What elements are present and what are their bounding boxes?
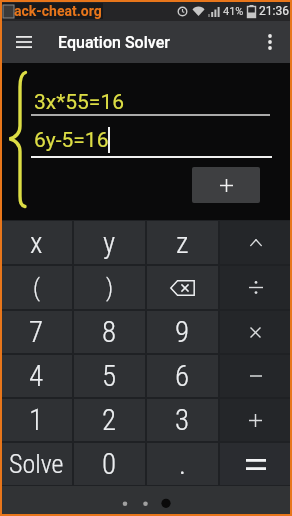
button[interactable]	[220, 311, 291, 353]
button[interactable]: 6	[147, 355, 218, 397]
staticText: 5	[102, 359, 117, 393]
button[interactable]	[252, 21, 288, 63]
staticText: 1	[29, 403, 44, 437]
staticText: 6	[175, 359, 190, 393]
staticText: 8	[102, 315, 117, 349]
staticText: x	[30, 226, 43, 260]
button[interactable]: 8	[74, 311, 145, 353]
staticText: 2	[102, 403, 117, 437]
button[interactable]	[220, 399, 291, 441]
button[interactable]: 2	[74, 399, 145, 441]
button[interactable]: 7	[1, 311, 72, 353]
button[interactable]: .	[147, 443, 218, 485]
button[interactable]	[220, 355, 291, 397]
button[interactable]	[220, 221, 291, 264]
staticText: ack-cheat.org	[14, 3, 102, 19]
staticText: )	[106, 274, 114, 302]
staticText: 0	[102, 447, 117, 481]
button[interactable]: 9	[147, 311, 218, 353]
button[interactable]	[220, 266, 291, 309]
button[interactable]: 4	[1, 355, 72, 397]
button[interactable]: Solve	[1, 443, 72, 485]
button[interactable]: z	[147, 221, 218, 264]
staticText: z	[176, 226, 189, 260]
staticText: 9	[175, 315, 190, 349]
staticText: 6y-5=16	[34, 128, 109, 153]
staticText: 3x*55=16	[34, 90, 124, 115]
staticText: 3	[175, 403, 190, 437]
staticText: (	[33, 274, 40, 302]
staticText: .	[179, 447, 186, 481]
button[interactable]: )	[74, 266, 145, 309]
button[interactable]	[192, 167, 260, 203]
staticText: Equation Solver	[58, 33, 170, 52]
button[interactable]: 0	[74, 443, 145, 485]
button[interactable]	[220, 443, 291, 485]
staticText: 41%	[223, 5, 244, 18]
staticText: 7	[29, 315, 44, 349]
button[interactable]: 5	[74, 355, 145, 397]
button[interactable]: 3	[147, 399, 218, 441]
button[interactable]: (	[1, 266, 72, 309]
button[interactable]: y	[74, 221, 145, 264]
button[interactable]	[147, 266, 218, 309]
staticText: y	[103, 226, 116, 260]
staticText: 4	[29, 359, 44, 393]
button[interactable]	[0, 21, 48, 63]
button[interactable]: x	[1, 221, 72, 264]
button[interactable]: 1	[1, 399, 72, 441]
staticText: 21:36	[259, 4, 289, 18]
staticText: Solve	[9, 449, 64, 479]
